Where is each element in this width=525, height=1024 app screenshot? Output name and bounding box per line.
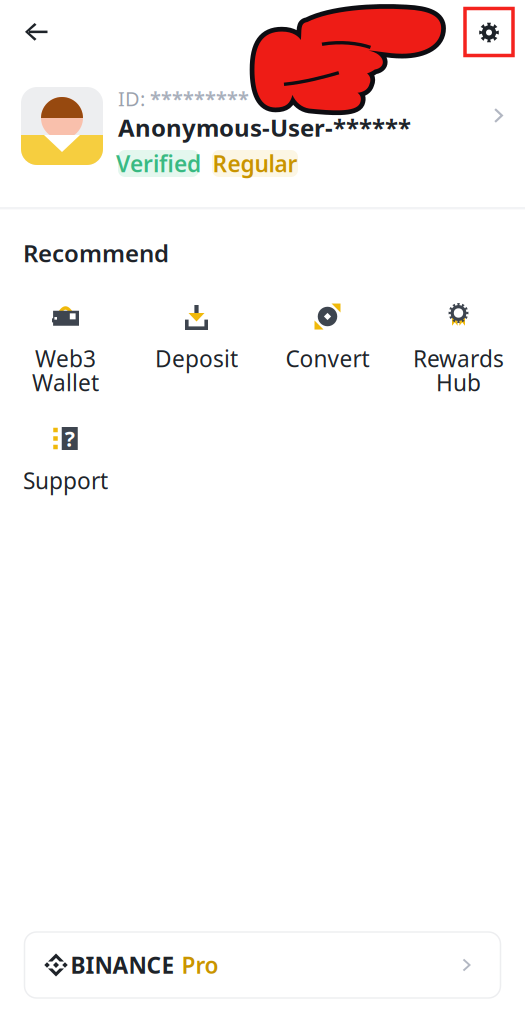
staticText: Support (23, 465, 108, 495)
staticText: Convert (285, 343, 369, 373)
staticText: Hub (436, 367, 481, 397)
button[interactable]: BINANCE (24, 932, 500, 998)
staticText: Regular (212, 148, 297, 178)
button[interactable]: Deposit (131, 303, 262, 392)
staticText: BINANCE (70, 950, 174, 980)
button[interactable]: Web3 (0, 303, 131, 392)
staticText: Pro (181, 950, 218, 980)
staticText: Deposit (155, 343, 238, 373)
button[interactable]: ? (0, 425, 131, 514)
staticText: Web3 (35, 343, 96, 373)
staticText: Rewards (413, 343, 504, 373)
button[interactable]: Convert (262, 303, 393, 392)
button[interactable]: Rewards (393, 303, 524, 392)
staticText: ID: (118, 85, 145, 112)
button[interactable]: Back (0, 11, 66, 53)
staticText: Verified (116, 148, 201, 178)
button[interactable]: Settings (465, 8, 525, 55)
button[interactable]: ID: (0, 64, 525, 207)
staticText: Anonymous-User-****** (118, 112, 411, 143)
staticText: Wallet (32, 367, 99, 397)
staticText: Recommend (23, 237, 169, 269)
staticText: ? (65, 424, 75, 453)
staticText: ********* (150, 85, 249, 112)
